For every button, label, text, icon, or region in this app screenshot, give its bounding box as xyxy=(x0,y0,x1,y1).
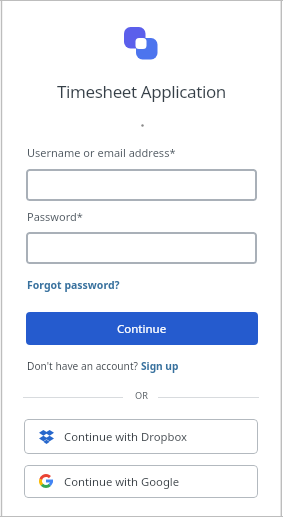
staticText: Continue with Google xyxy=(64,474,180,489)
staticText: Username or email address* xyxy=(27,145,176,160)
staticText: OR xyxy=(0,389,283,402)
button[interactable] xyxy=(26,169,257,201)
staticText: Sign up xyxy=(141,359,179,373)
staticText: Continue xyxy=(117,321,167,337)
button[interactable]: Forgot password? xyxy=(27,278,120,292)
staticText: Forgot password? xyxy=(27,278,120,292)
button[interactable]: Continue with Dropbox xyxy=(24,419,258,454)
staticText: Password* xyxy=(27,209,83,224)
staticText: Timesheet Application xyxy=(0,80,283,103)
button[interactable] xyxy=(26,232,257,264)
button[interactable]: Sign up xyxy=(141,359,179,373)
staticText: Continue with Dropbox xyxy=(64,429,188,444)
staticText: Don't have an account? xyxy=(27,359,141,373)
button[interactable]: Continue with Google xyxy=(24,465,258,498)
button[interactable]: Continue xyxy=(26,312,258,345)
